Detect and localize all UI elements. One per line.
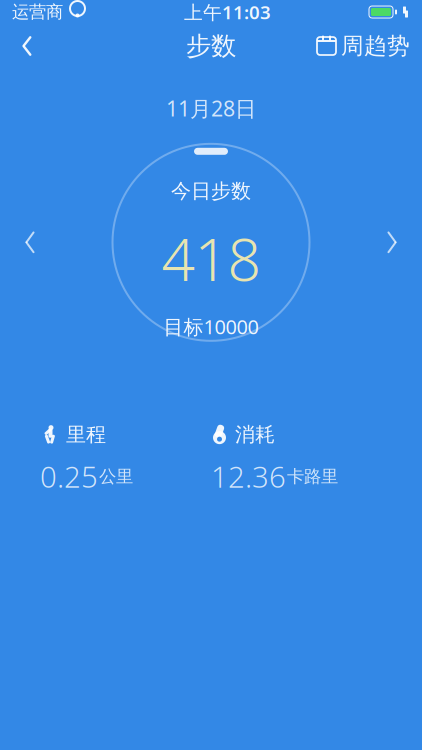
staticText: 上午11:03 — [184, 0, 271, 24]
staticText: 11月28日 — [166, 94, 256, 122]
staticText: 公里 — [99, 466, 133, 487]
staticText: 12.36 — [211, 457, 286, 496]
staticText: 目标10000 — [163, 313, 258, 340]
staticText: 消耗 — [235, 422, 275, 447]
button[interactable]: 返回 — [0, 24, 54, 68]
staticText: 周趋势 — [341, 32, 410, 60]
staticText: 0.25 — [40, 457, 98, 496]
button[interactable]: 后一天 — [366, 212, 418, 272]
button[interactable]: 周趋势 — [304, 24, 422, 68]
staticText: 步数 — [186, 30, 236, 61]
staticText: 今日步数 — [171, 179, 251, 203]
staticText: 卡路里 — [287, 466, 338, 487]
button[interactable]: 前一天 — [4, 212, 56, 272]
staticText: 里程 — [66, 422, 106, 447]
staticText: 运营商 — [12, 1, 63, 23]
staticText: 418 — [161, 219, 260, 297]
